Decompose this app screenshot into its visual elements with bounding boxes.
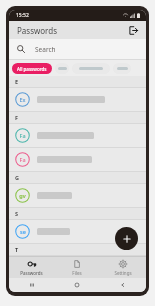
- staticText: gv: [19, 192, 26, 199]
- staticText: G: [15, 174, 19, 181]
- button[interactable]: Fa: [9, 124, 146, 147]
- button[interactable]: Filter: [55, 63, 69, 74]
- staticText: T: [15, 246, 19, 253]
- button[interactable]: Ex: [9, 88, 146, 111]
- button[interactable]: Log out: [125, 22, 141, 38]
- button[interactable]: Back: [100, 278, 146, 292]
- button[interactable]: Filter: [72, 63, 110, 74]
- staticText: Fa: [19, 156, 26, 163]
- button[interactable]: Fa: [9, 148, 146, 171]
- button[interactable]: Home: [54, 278, 100, 292]
- button[interactable]: Add password: [115, 227, 138, 250]
- button[interactable]: Settings: [100, 257, 146, 278]
- button[interactable]: Files: [54, 257, 100, 278]
- staticText: Ex: [19, 96, 26, 103]
- staticText: Passwords: [17, 25, 58, 36]
- staticText: F: [15, 114, 19, 121]
- button[interactable]: se: [9, 220, 146, 243]
- staticText: Passwords: [20, 270, 43, 276]
- staticText: Settings: [114, 270, 132, 276]
- staticText: S: [15, 210, 19, 217]
- button[interactable]: All passwords: [12, 63, 52, 74]
- staticText: Search: [35, 45, 56, 54]
- button[interactable]: gv: [9, 184, 146, 207]
- button[interactable]: Passwords: [9, 257, 54, 278]
- staticText: All passwords: [17, 66, 47, 72]
- staticText: 15:52: [16, 12, 29, 19]
- staticText: Fa: [19, 132, 26, 139]
- staticText: se: [20, 228, 26, 235]
- button[interactable]: Search: [9, 39, 146, 59]
- staticText: E: [15, 78, 19, 85]
- button[interactable]: Recent apps: [9, 278, 54, 292]
- staticText: Files: [72, 270, 82, 276]
- button[interactable]: Filter: [113, 63, 131, 74]
